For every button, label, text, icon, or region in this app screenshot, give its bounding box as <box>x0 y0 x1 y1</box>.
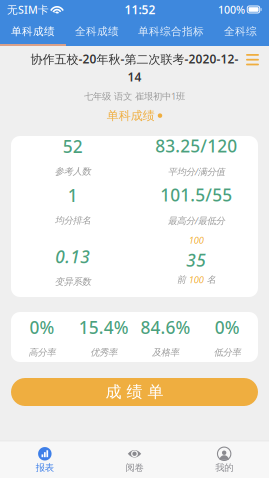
staticText: 35 <box>186 248 206 271</box>
staticText: 最高分/最低分 <box>168 214 225 227</box>
staticText: 单科综合指标 <box>138 25 204 38</box>
button[interactable]: 菜单 <box>236 46 269 74</box>
staticText: 平均分/满分值 <box>168 165 225 178</box>
staticText: 成 绩 单 <box>105 382 163 402</box>
staticText: 前 <box>177 274 186 285</box>
button[interactable]: 全科综 <box>214 19 267 44</box>
staticText: 高分率 <box>28 347 55 358</box>
staticText: 101.5/55 <box>160 183 232 206</box>
staticText: 名 <box>207 274 216 285</box>
staticText: 14 <box>127 69 141 85</box>
button[interactable]: 全科成绩 <box>66 19 128 44</box>
staticText: 协作五校-20年秋-第二次联考-2020-12- <box>30 51 238 67</box>
staticText: 1 <box>68 184 78 207</box>
staticText: 11:52 <box>124 1 155 17</box>
staticText: 100 <box>189 234 204 246</box>
staticText: 阅卷 <box>125 462 143 473</box>
staticText: 参考人数 <box>55 166 91 177</box>
staticText: 无SIM卡 <box>7 2 49 17</box>
staticText: 84.6% <box>140 316 190 339</box>
staticText: 0% <box>29 316 54 339</box>
staticText: 均分排名 <box>55 215 91 226</box>
staticText: 52 <box>63 135 83 158</box>
staticText: 变异系数 <box>55 276 91 287</box>
staticText: 优秀率 <box>90 347 117 358</box>
button[interactable]: 单科成绩 <box>0 19 66 44</box>
staticText: 0.13 <box>55 245 90 268</box>
button[interactable]: 阅卷 <box>90 441 179 478</box>
staticText: 七年级 语文 崔垠初中1班 <box>84 90 185 102</box>
button[interactable]: 报表 <box>0 441 90 478</box>
staticText: 0% <box>215 316 240 339</box>
staticText: 15.4% <box>79 316 129 339</box>
button[interactable]: 成 绩 单 <box>11 378 258 406</box>
staticText: 单科成绩 <box>107 108 155 123</box>
staticText: 及格率 <box>152 347 179 358</box>
staticText: 100% <box>218 2 245 17</box>
button[interactable]: 单科综合指标 <box>128 19 214 44</box>
staticText: 100 <box>189 273 204 286</box>
staticText: 我的 <box>215 462 233 473</box>
button[interactable]: 我的 <box>179 441 269 478</box>
staticText: 全科综 <box>224 25 257 38</box>
staticText: 低分率 <box>214 347 241 358</box>
staticText: 单科成绩 <box>11 25 55 38</box>
staticText: 报表 <box>36 462 54 473</box>
staticText: 83.25/120 <box>155 134 237 157</box>
staticText: 全科成绩 <box>75 25 119 38</box>
